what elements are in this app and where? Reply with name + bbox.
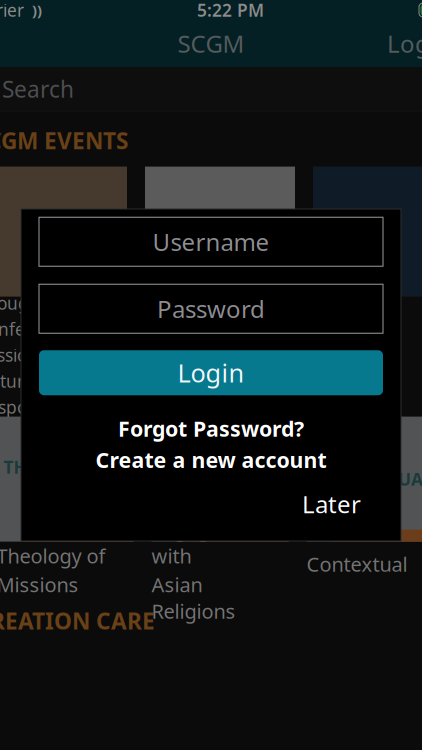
staticText: Reform [145, 331, 205, 354]
staticText: )) [24, 0, 42, 20]
button[interactable]: Later [292, 482, 371, 526]
button[interactable]: Drought [0, 167, 127, 417]
button[interactable]: Login [39, 350, 383, 395]
staticText: Create a new account [95, 446, 326, 474]
button[interactable]: Create a new account [95, 446, 326, 474]
staticText: ENGAGEMENT [159, 444, 281, 467]
staticText: Reflections [145, 357, 233, 380]
button[interactable]: Username [39, 217, 383, 266]
staticText: Missions [0, 571, 78, 598]
staticText: Gospel [145, 305, 201, 328]
staticText: Username [152, 226, 269, 258]
staticText: Later [302, 488, 361, 520]
staticText: Engagement with [151, 516, 269, 569]
staticText: Forgot Password? [118, 414, 304, 442]
staticText: Nature and [0, 370, 71, 393]
staticText: Login [177, 356, 244, 389]
staticText: Conference [0, 318, 71, 341]
staticText: Carrier [0, 0, 24, 21]
button[interactable]: ENGAGEMENT [151, 417, 288, 600]
staticText: Reflections [313, 357, 401, 380]
button[interactable]: Password [39, 284, 383, 333]
staticText: Login [387, 28, 422, 59]
staticText: Reform [313, 331, 373, 354]
staticText: THEOLOGY OF [3, 456, 126, 479]
button[interactable]: THEOLOGY OF [0, 417, 133, 600]
staticText: SCGM EVENTS [0, 125, 128, 156]
staticText: Password [157, 293, 265, 325]
staticText: SCGM [177, 28, 244, 59]
staticText: CONTEXTUAL [317, 468, 422, 491]
staticText: Search [2, 74, 74, 104]
staticText: Responsibility [0, 396, 88, 419]
button[interactable]: Forgot Password? [118, 414, 304, 442]
button[interactable]: Gospel [145, 167, 295, 417]
staticText: Drought [0, 292, 46, 315]
button[interactable]: Gospel [313, 167, 422, 417]
button[interactable]: CONTEXTUAL [306, 417, 422, 600]
staticText: Theology of [0, 542, 105, 569]
button[interactable]: Login [375, 20, 422, 67]
staticText: Contextual [306, 551, 407, 577]
staticText: Sessions on [0, 344, 72, 367]
staticText: CREATION CARE [0, 606, 155, 636]
staticText: 5:22 PM [197, 0, 264, 21]
staticText: Asian Religions [151, 571, 235, 624]
